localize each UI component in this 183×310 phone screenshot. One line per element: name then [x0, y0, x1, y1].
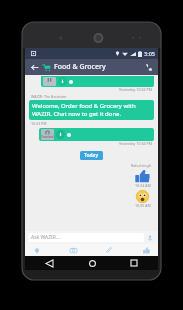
button[interactable]: Download — [58, 77, 67, 86]
button[interactable]: Call — [142, 61, 154, 73]
staticText: Food & Grocery — [54, 62, 106, 72]
button[interactable]: Camera — [68, 245, 79, 256]
button[interactable]: Download — [41, 76, 154, 87]
staticText: 10:33 PM — [31, 121, 47, 126]
button[interactable]: Download — [39, 128, 154, 141]
staticText: 10:34 AM — [135, 183, 151, 188]
staticText: WAZIR: The Assistant — [31, 94, 67, 99]
button[interactable]: Back — [29, 62, 40, 73]
staticText: Yesterday 10:32 PM — [119, 87, 152, 92]
button[interactable]: Back — [43, 257, 55, 269]
button[interactable]: Ask WAZIR... — [28, 233, 144, 242]
button[interactable]: Attach file — [104, 245, 115, 256]
staticText: Download — [41, 135, 54, 139]
staticText: Rahul singh — [131, 163, 151, 168]
button[interactable]: Send thumbs up — [141, 245, 152, 256]
button[interactable]: Home — [86, 257, 98, 269]
button[interactable]: Recent apps — [128, 257, 140, 269]
staticText: Today — [84, 152, 99, 159]
button[interactable]: Share location — [31, 245, 42, 256]
staticText: Welcome, Order food & Grocery with WAZIR… — [32, 102, 136, 118]
staticText: Yesterday 10:34 PM — [119, 141, 152, 146]
button[interactable]: Welcome, Order food & Grocery with WAZIR… — [29, 100, 154, 120]
button[interactable]: Download audio — [56, 130, 65, 139]
button[interactable]: Voice input — [144, 232, 155, 243]
staticText: 3:05 — [144, 50, 155, 57]
staticText: 10:35 AM — [135, 203, 151, 208]
staticText: Ask WAZIR... — [31, 234, 60, 241]
